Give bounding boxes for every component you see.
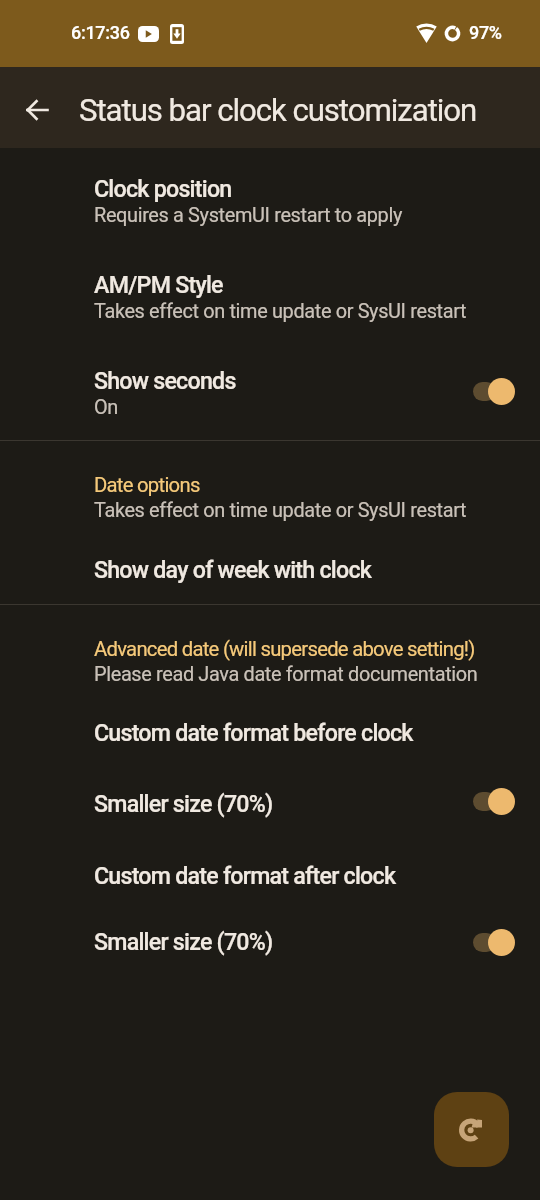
staticText: Smaller size (70%) — [94, 790, 273, 817]
staticText: AM/PM Style — [94, 271, 223, 298]
staticText: Custom date format after clock — [94, 862, 396, 889]
button[interactable]: Show seconds — [0, 367, 540, 419]
staticText: Advanced date (will supersede above sett… — [94, 637, 475, 661]
button[interactable]: AM/PM Style — [0, 271, 540, 323]
button[interactable]: Date options — [0, 473, 540, 522]
staticText: Show day of week with clock — [94, 556, 372, 583]
staticText: Smaller size (70%) — [94, 928, 273, 955]
staticText: Status bar clock customization — [79, 92, 477, 129]
staticText: Please read Java date format documentati… — [94, 663, 478, 686]
button[interactable]: Back — [10, 83, 63, 136]
staticText: Show seconds — [94, 367, 236, 394]
button[interactable]: Smaller size (70%) — [0, 790, 540, 817]
button[interactable]: Toggle — [472, 378, 516, 405]
button[interactable]: Clock position — [0, 175, 540, 227]
staticText: Takes effect on time update or SysUI res… — [94, 300, 467, 323]
button[interactable]: Show day of week with clock — [0, 556, 540, 583]
button[interactable]: Custom date format before clock — [0, 719, 540, 746]
staticText: Clock position — [94, 175, 232, 202]
staticText: Date options — [94, 473, 200, 497]
staticText: Requires a SystemUI restart to apply — [94, 204, 402, 227]
staticText: On — [94, 396, 118, 419]
button[interactable]: Smaller size (70%) — [0, 928, 540, 955]
button[interactable]: Toggle — [472, 788, 516, 815]
button[interactable]: Advanced date (will supersede above sett… — [0, 637, 540, 686]
staticText: Custom date format before clock — [94, 719, 413, 746]
button[interactable]: Reset to defaults — [434, 1092, 509, 1167]
staticText: 6:17:36 — [71, 22, 130, 43]
button[interactable]: Toggle — [472, 929, 516, 956]
staticText: Takes effect on time update or SysUI res… — [94, 499, 467, 522]
button[interactable]: Custom date format after clock — [0, 862, 540, 889]
staticText: 97% — [469, 22, 502, 43]
